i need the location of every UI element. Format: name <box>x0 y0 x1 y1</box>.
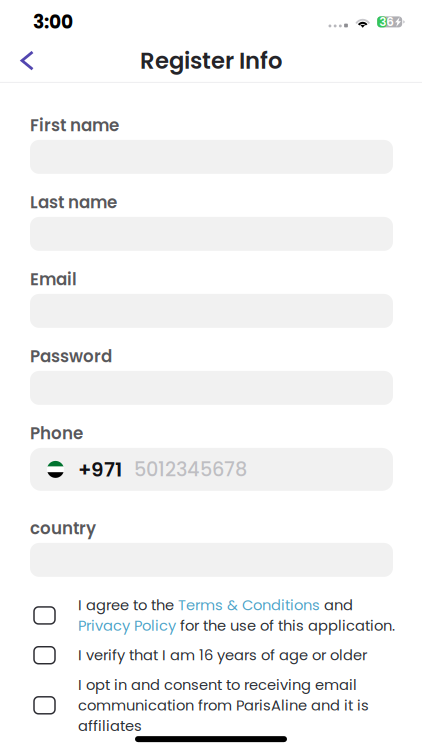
button[interactable]: Phone number <box>30 448 393 491</box>
staticText: +971 <box>78 455 122 483</box>
staticText: I verify that I am 16 years of age or ol… <box>78 645 367 665</box>
staticText: 5012345678 <box>134 456 247 483</box>
staticText: Last name <box>30 191 117 214</box>
button[interactable]: I verify that I am 16 years of age or ol… <box>34 645 410 665</box>
staticText: Register Info <box>140 45 282 77</box>
staticText: I opt in and consent to receiving email … <box>78 674 369 736</box>
staticText: First name <box>30 114 119 137</box>
button[interactable]: I opt in and consent to receiving email … <box>34 674 410 736</box>
button[interactable]: I agree to the Terms and Conditions and … <box>34 595 410 636</box>
button[interactable]: Back <box>6 40 49 81</box>
staticText: 36 <box>379 13 394 30</box>
staticText: Password <box>30 345 112 368</box>
staticText: Phone <box>30 422 83 445</box>
staticText: Email <box>30 268 77 291</box>
staticText: I agree to the Terms & Conditions and Pr… <box>78 595 395 636</box>
staticText: 3:00 <box>33 9 73 35</box>
staticText: country <box>30 517 96 540</box>
